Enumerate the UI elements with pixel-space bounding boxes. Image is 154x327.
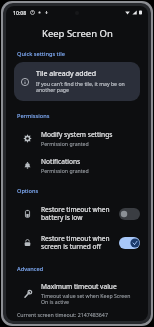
staticText: If you can't find the tile, it may be on…: [36, 80, 133, 94]
staticText: Permission granted: [41, 140, 89, 147]
staticText: 10:08: [13, 9, 27, 16]
staticText: Keep Screen On: [42, 27, 113, 40]
button[interactable]: Tile already added: [14, 62, 140, 101]
button[interactable]: Restore timeout when battery is low: [6, 199, 148, 228]
button[interactable]: Restore timeout when screen is turned of…: [6, 228, 148, 257]
staticText: Timeout value set when Keep Screen On is…: [41, 292, 138, 306]
staticText: Restore timeout when battery is low: [41, 205, 114, 222]
staticText: Tile already added: [36, 69, 97, 79]
staticText: Advanced: [17, 265, 44, 273]
staticText: Permission granted: [41, 167, 89, 174]
staticText: Quick settings tile: [17, 50, 65, 58]
staticText: Modify system settings: [41, 130, 113, 139]
staticText: Notifications: [41, 157, 81, 166]
staticText: Options: [17, 187, 39, 195]
button[interactable]: Off: [119, 208, 140, 220]
staticText: Permissions: [17, 112, 50, 120]
button[interactable]: Modify system settings: [6, 125, 148, 152]
staticText: Current screen timeout: 2147483647: [17, 311, 108, 318]
button[interactable]: Maximum timeout value: [6, 277, 148, 311]
staticText: Maximum timeout value: [41, 282, 117, 291]
button[interactable]: Notifications: [6, 152, 148, 179]
button[interactable]: On: [119, 237, 140, 249]
staticText: Restore timeout when screen is turned of…: [41, 234, 114, 251]
